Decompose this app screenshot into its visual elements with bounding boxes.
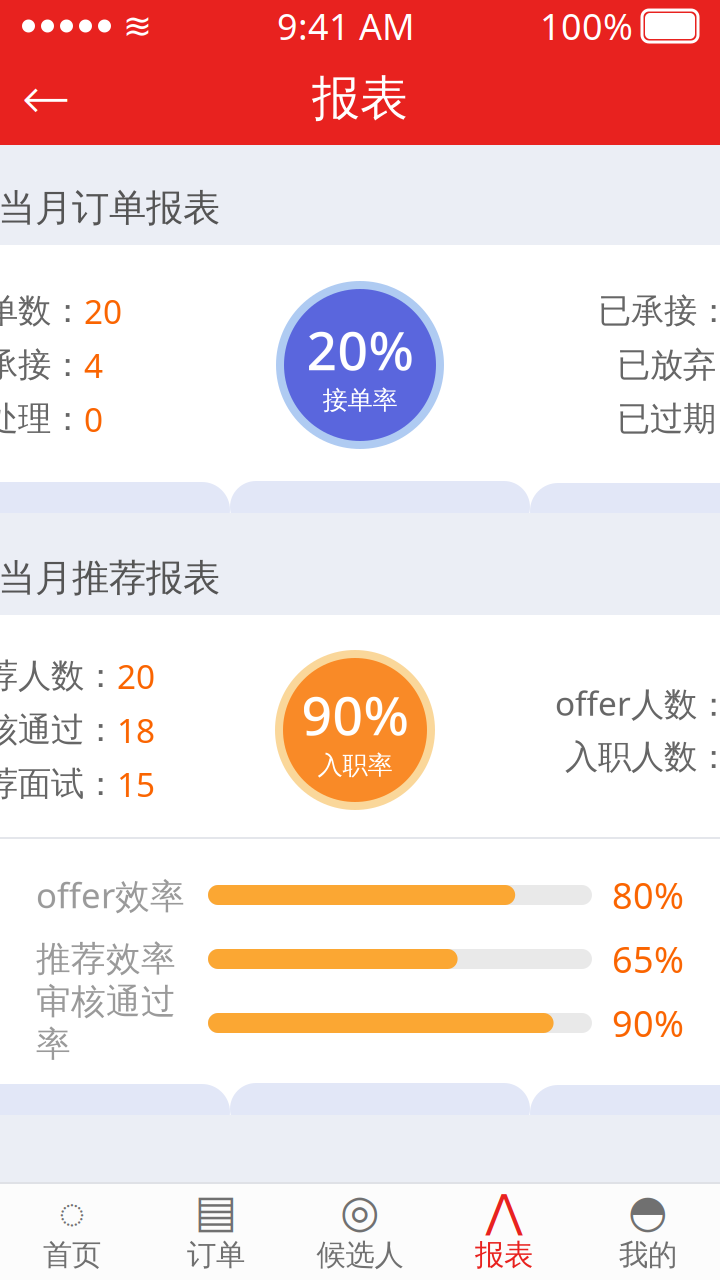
- staticText: ▤: [194, 1185, 237, 1237]
- staticText: ◌: [58, 1181, 85, 1241]
- staticText: 报表: [475, 1237, 533, 1273]
- staticText: 100%: [540, 2, 633, 50]
- button[interactable]: 返回: [0, 52, 92, 144]
- button[interactable]: ◎: [288, 1184, 432, 1280]
- staticText: 65%: [612, 935, 684, 983]
- staticText: 0: [84, 397, 103, 441]
- staticText: 当月推荐报表: [0, 555, 220, 601]
- staticText: 派单数：: [0, 290, 84, 331]
- button[interactable]: ▤: [144, 1184, 288, 1280]
- staticText: 推荐效率: [36, 938, 176, 980]
- staticText: 首页: [43, 1237, 101, 1273]
- button[interactable]: 当月推荐报表: [0, 541, 720, 615]
- button[interactable]: ◓: [576, 1184, 720, 1280]
- staticText: 接单率: [322, 385, 397, 416]
- staticText: 未处理：: [0, 398, 84, 439]
- button[interactable]: ⋀: [432, 1184, 576, 1280]
- staticText: ◎: [340, 1185, 380, 1237]
- staticText: 当月订单报表: [0, 185, 220, 231]
- staticText: 推荐面试：: [0, 763, 117, 804]
- staticText: 入职人数：: [565, 736, 720, 777]
- staticText: ←: [21, 65, 70, 132]
- staticText: 已放弃：: [617, 344, 720, 385]
- staticText: ⋀: [485, 1185, 522, 1237]
- staticText: 审核通过：: [0, 709, 117, 750]
- staticText: 已过期：: [617, 398, 720, 439]
- staticText: 候选人: [316, 1237, 403, 1273]
- staticText: 我的: [619, 1237, 677, 1273]
- staticText: 9:41 AM: [277, 2, 415, 50]
- staticText: 推荐人数：: [0, 655, 117, 696]
- staticText: 80%: [612, 871, 684, 919]
- staticText: 审核通过率: [36, 980, 176, 1066]
- staticText: 未承接：: [0, 344, 84, 385]
- staticText: 15: [117, 762, 155, 806]
- staticText: offer效率: [36, 872, 185, 918]
- staticText: 90%: [301, 679, 408, 750]
- staticText: ≋: [123, 6, 152, 46]
- staticText: offer人数：: [555, 681, 720, 725]
- staticText: 入职率: [317, 750, 392, 781]
- staticText: 90%: [612, 999, 684, 1047]
- staticText: 已承接：: [598, 290, 720, 331]
- staticText: 20: [117, 654, 155, 698]
- staticText: 4: [84, 343, 103, 387]
- staticText: 20: [84, 289, 122, 333]
- staticText: 报表: [312, 69, 408, 128]
- staticText: 18: [117, 708, 155, 752]
- staticText: 订单: [187, 1237, 245, 1273]
- button[interactable]: ◌: [0, 1184, 144, 1280]
- staticText: 20%: [306, 314, 413, 385]
- staticText: ◓: [628, 1185, 668, 1237]
- button[interactable]: 当月订单报表: [0, 171, 720, 245]
